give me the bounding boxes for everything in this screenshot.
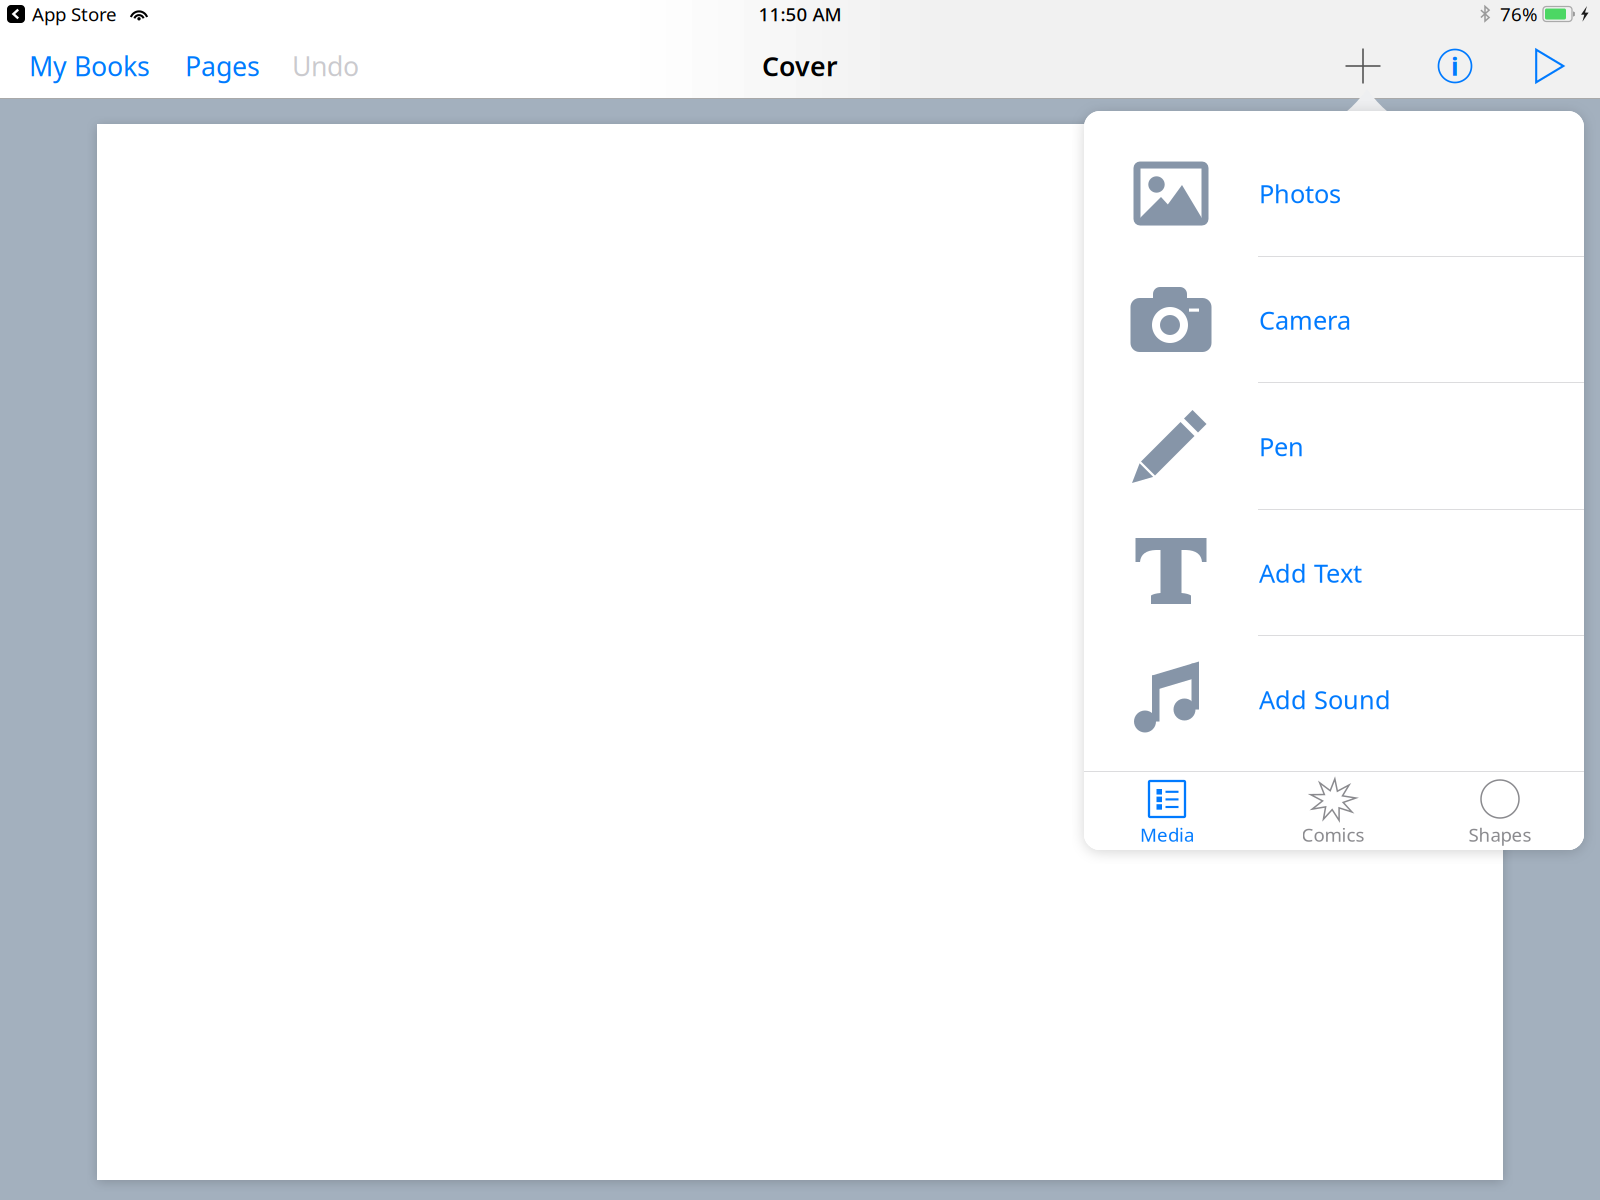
button[interactable]: Add Text [1084,510,1584,636]
staticText: i [1451,49,1459,83]
button[interactable]: Undo [281,40,370,92]
staticText: Photos [1259,177,1341,210]
staticText: Media [1140,822,1194,847]
staticText: Pages [185,48,260,84]
staticText: Add Sound [1259,683,1391,716]
staticText: App Store [32,2,117,26]
button[interactable]: Info [1427,37,1483,95]
staticText: 11:50 AM [758,2,841,26]
staticText: Pen [1259,430,1304,463]
button[interactable]: Add [1335,37,1391,95]
staticText: Cover [762,48,838,84]
staticText: Undo [292,48,359,84]
button[interactable]: Photos [1084,130,1584,257]
button[interactable]: Add Sound [1084,636,1584,763]
button[interactable]: Shapes [1416,772,1584,850]
button[interactable]: Preview [1522,37,1578,95]
button[interactable]: Pen [1084,383,1584,510]
staticText: My Books [29,48,150,84]
staticText: Comics [1301,822,1364,847]
staticText: Camera [1259,303,1351,337]
staticText: 76% [1500,2,1538,26]
button[interactable]: Pages [174,40,271,92]
staticText: Add Text [1259,556,1362,590]
button[interactable]: My Books [11,40,168,92]
button[interactable]: Media [1084,772,1250,850]
button[interactable]: App Store [7,0,117,28]
button[interactable]: Comics [1250,772,1416,850]
staticText: Shapes [1468,822,1531,847]
button[interactable]: Camera [1084,257,1584,383]
